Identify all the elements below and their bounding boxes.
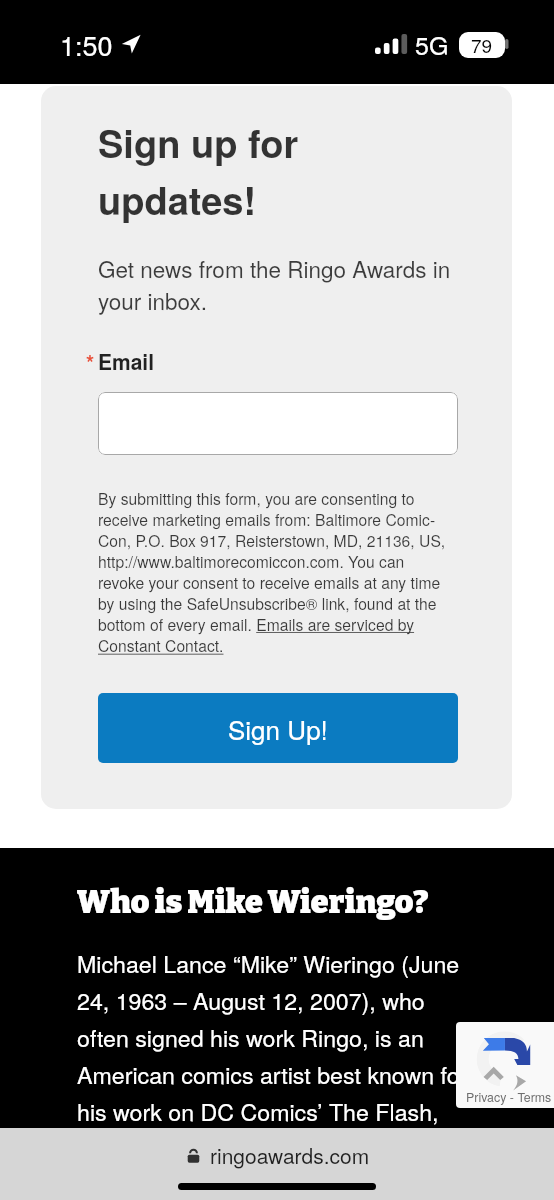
button[interactable]: reCAPTCHA Privacy and Terms <box>456 1022 554 1108</box>
staticText: Sign Up! <box>228 710 328 747</box>
button[interactable]: ringoawards.com <box>185 1140 370 1170</box>
staticText: 5G <box>415 26 449 62</box>
staticText: Who is Mike Wieringo? <box>77 883 429 922</box>
staticText: 1:50 <box>60 25 113 64</box>
staticText: Privacy - Terms <box>466 1088 552 1106</box>
staticText: * <box>86 347 95 371</box>
staticText: Michael Lance “Mike” Wieringo (June 24, … <box>77 946 468 1127</box>
staticText: Sign up for updates! <box>98 115 299 227</box>
button[interactable]: Sign Up! <box>98 693 458 763</box>
staticText: By submitting this form, you are consent… <box>98 487 456 657</box>
staticText: ringoawards.com <box>210 1140 370 1170</box>
staticText: Get news from the Ringo Awards in your i… <box>98 252 451 316</box>
staticText: Email <box>98 346 155 370</box>
button[interactable]: Email input <box>98 392 458 455</box>
staticText: 79 <box>471 31 493 58</box>
